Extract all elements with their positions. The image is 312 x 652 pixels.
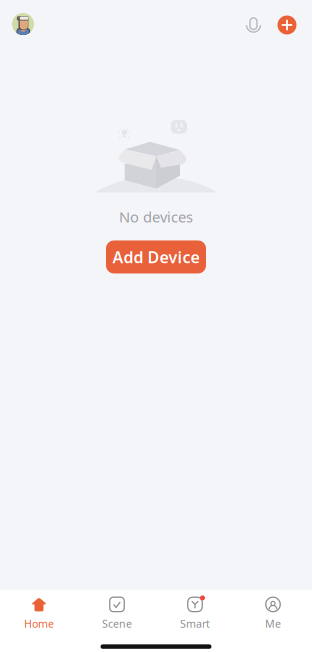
- button[interactable]: Voice assistant: [240, 11, 266, 39]
- button[interactable]: Smart: [156, 588, 234, 636]
- staticText: Scene: [102, 616, 132, 631]
- button[interactable]: Profile: [1, 2, 45, 46]
- button[interactable]: Add Device: [106, 240, 206, 273]
- staticText: Home: [24, 616, 54, 631]
- button[interactable]: Add device: [273, 11, 300, 38]
- button[interactable]: Home: [0, 588, 78, 636]
- staticText: Add Device: [112, 246, 199, 268]
- button[interactable]: Scene: [78, 588, 156, 636]
- staticText: Smart: [180, 616, 210, 631]
- staticText: No devices: [119, 207, 193, 226]
- button[interactable]: Me: [234, 588, 312, 636]
- staticText: Me: [265, 616, 281, 631]
